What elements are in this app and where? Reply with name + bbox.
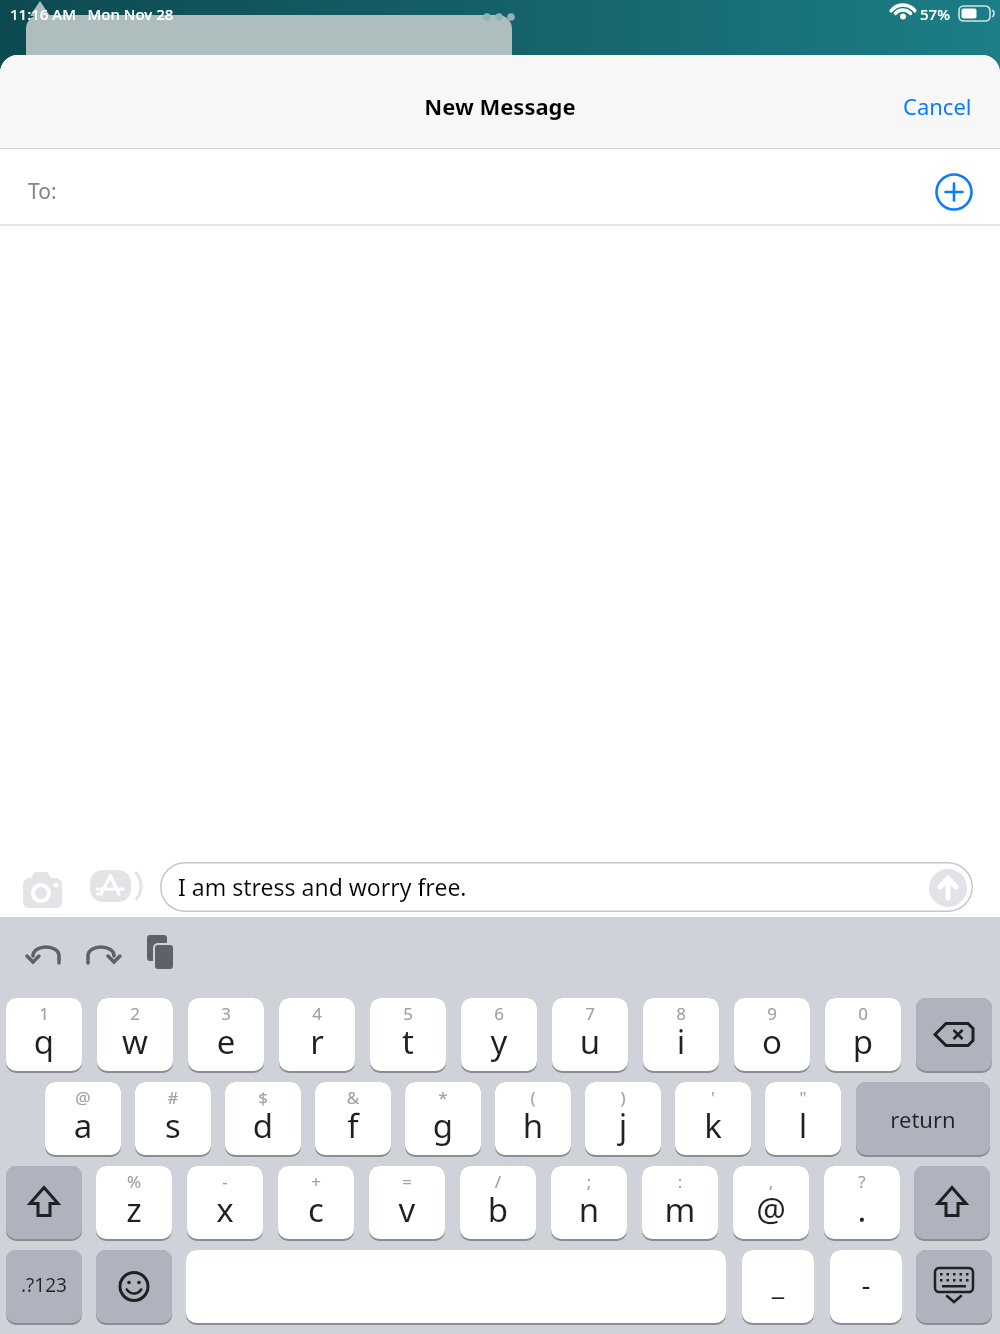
staticText: n [551,1187,627,1232]
staticText: ; [551,1170,627,1193]
button[interactable] [405,1082,481,1155]
staticText: l [765,1103,841,1148]
button[interactable] [186,1250,726,1323]
staticText: 9 [734,1002,810,1025]
staticText: i [643,1019,719,1064]
button[interactable] [733,1166,809,1239]
button[interactable] [96,1166,172,1239]
button[interactable] [187,1166,263,1239]
staticText: " [765,1086,841,1109]
staticText: m [642,1187,718,1232]
staticText: / [460,1170,536,1193]
staticText: Cancel [903,91,972,121]
staticText: + [278,1170,354,1193]
button[interactable] [643,998,719,1071]
button[interactable] [461,998,537,1071]
staticText: * [405,1086,481,1109]
button[interactable] [88,867,144,907]
staticText: ' [675,1086,751,1109]
staticText: b [460,1187,536,1232]
staticText: .?123 [6,1272,82,1298]
button[interactable] [552,998,628,1071]
button[interactable] [460,1166,536,1239]
staticText: z [96,1187,172,1232]
button[interactable] [495,1082,571,1155]
staticText: o [734,1019,810,1064]
button[interactable] [929,869,967,907]
staticText: @ [733,1187,809,1232]
staticText: 5 [370,1002,446,1025]
staticText: # [135,1086,211,1109]
button[interactable] [6,1250,82,1323]
staticText: s [135,1103,211,1148]
button[interactable] [278,1166,354,1239]
staticText: 3 [188,1002,264,1025]
button[interactable] [930,168,978,216]
button[interactable] [188,998,264,1071]
staticText: 6 [461,1002,537,1025]
button[interactable] [279,998,355,1071]
button[interactable] [916,1250,992,1323]
staticText: I am stress and worry free. [178,871,467,902]
staticText: & [315,1086,391,1109]
button[interactable] [585,1082,661,1155]
staticText: . [824,1187,900,1232]
button[interactable] [914,1166,990,1239]
button[interactable] [916,998,992,1071]
staticText: ( [495,1086,571,1109]
button[interactable] [16,865,70,911]
button[interactable] [6,998,82,1071]
staticText: New Message [0,91,1000,121]
button[interactable] [824,1166,900,1239]
staticText: j [585,1103,661,1148]
button[interactable] [160,862,973,912]
staticText: e [188,1019,264,1064]
staticText: x [187,1187,263,1232]
staticText: 0 [825,1002,901,1025]
button[interactable] [369,1166,445,1239]
button[interactable] [885,75,995,130]
button[interactable] [642,1166,718,1239]
staticText: $ [225,1086,301,1109]
button[interactable] [675,1082,751,1155]
button[interactable] [225,1082,301,1155]
button[interactable] [856,1082,990,1155]
staticText: ? [824,1170,900,1193]
staticText: = [369,1170,445,1193]
button[interactable] [830,1250,902,1323]
staticText: f [315,1103,391,1148]
staticText: d [225,1103,301,1148]
staticText: r [279,1019,355,1064]
button[interactable] [551,1166,627,1239]
button[interactable] [370,998,446,1071]
button[interactable] [45,1082,121,1155]
staticText: 7 [552,1002,628,1025]
button[interactable] [135,1082,211,1155]
staticText: : [642,1170,718,1193]
button[interactable] [97,998,173,1071]
staticText: 11:16 AM Mon Nov 28 [10,4,174,24]
button[interactable] [734,998,810,1071]
staticText: t [370,1019,446,1064]
button[interactable] [765,1082,841,1155]
button[interactable] [825,998,901,1071]
staticText: g [405,1103,481,1148]
staticText: % [96,1170,172,1193]
staticText: - [830,1265,902,1303]
button[interactable] [742,1250,814,1323]
staticText: To: [28,177,57,206]
staticText: _ [742,1265,814,1303]
staticText: 8 [643,1002,719,1025]
button[interactable] [315,1082,391,1155]
button[interactable] [0,149,1000,224]
staticText: 1 [6,1002,82,1025]
staticText: @ [45,1086,121,1109]
staticText: 4 [279,1002,355,1025]
staticText: return [856,1104,990,1134]
button[interactable] [96,1250,172,1323]
staticText: k [675,1103,751,1148]
staticText: - [187,1170,263,1193]
staticText: h [495,1103,571,1148]
staticText: p [825,1019,901,1064]
button[interactable] [6,1166,82,1239]
